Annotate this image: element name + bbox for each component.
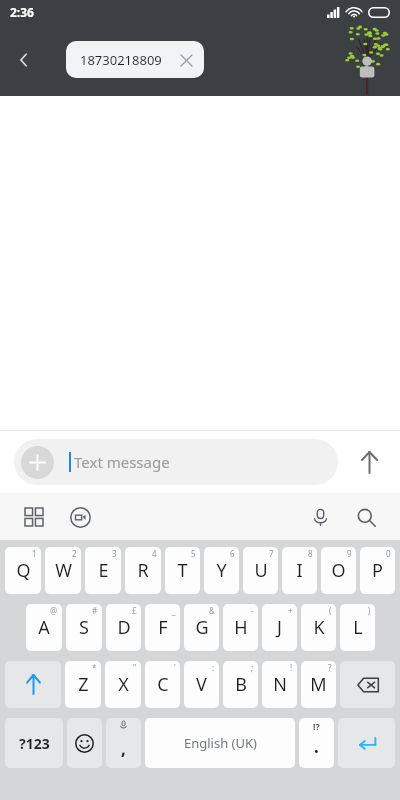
button[interactable]: U [243,547,278,594]
button[interactable]: 18730218809 [66,41,204,78]
staticText: R [137,558,149,583]
staticText: E [98,558,109,583]
button[interactable]: Add attachment [14,439,338,485]
staticText: Y [216,558,227,583]
button[interactable]: Z [65,661,101,708]
button[interactable]: Search [346,497,386,537]
button[interactable]: Apps [14,497,54,537]
staticText: U [254,558,268,583]
staticText: S [79,615,89,640]
button[interactable]: Remove recipient [176,50,196,70]
button[interactable]: Enter [338,718,395,768]
staticText: D [117,615,131,640]
staticText: L [353,615,363,640]
button[interactable]: W [45,547,81,594]
staticText: 4 [152,548,157,559]
button[interactable]: D [106,604,141,651]
staticText: J [277,615,282,640]
button[interactable]: Period [299,718,334,768]
button[interactable]: Contact photo [338,22,394,96]
button[interactable]: Add attachment [21,446,54,479]
button[interactable]: F [145,604,180,651]
staticText: 1 [32,548,37,559]
button[interactable]: Emoji [67,718,102,768]
staticText: , [121,737,126,760]
staticText: Q [16,558,31,583]
button[interactable]: Backspace [340,661,395,708]
button[interactable]: G [184,604,219,651]
staticText: W [55,558,72,583]
staticText: 9 [347,548,352,559]
staticText: @ [50,605,58,616]
button[interactable]: S [66,604,102,651]
staticText: T [177,558,188,583]
button[interactable]: English (UK) [145,718,295,768]
staticText: 3 [112,548,117,559]
staticText: " [133,662,137,673]
button[interactable]: R [125,547,161,594]
button[interactable]: Send [338,436,400,488]
staticText: F [158,615,168,640]
staticText: P [372,558,383,583]
staticText: + [288,605,293,616]
button[interactable]: O [321,547,356,594]
button[interactable]: ?123 [5,718,63,768]
staticText: £ [132,605,137,616]
button[interactable]: I [282,547,317,594]
staticText: B [235,672,247,697]
staticText: ?123 [19,734,50,753]
staticText: ' [174,662,176,673]
staticText: C [157,672,169,697]
staticText: 18730218809 [80,51,162,69]
staticText: _ [172,605,176,616]
button[interactable]: Comma [106,718,141,768]
staticText: Z [78,672,89,697]
button[interactable]: Y [204,547,239,594]
button[interactable]: Voice input [300,497,340,537]
staticText: & [209,605,215,616]
button[interactable]: H [223,604,258,651]
button[interactable]: T [165,547,200,594]
staticText: 0 [386,548,391,559]
button[interactable]: Shift [5,661,61,708]
button[interactable]: X [105,661,141,708]
staticText: ; [251,662,254,673]
staticText: ! [290,662,293,673]
staticText: 8 [308,548,313,559]
staticText: A [38,615,50,640]
staticText: K [313,615,325,640]
staticText: G [195,615,209,640]
staticText: * [92,662,97,673]
button[interactable]: A [26,604,62,651]
staticText: Text message [74,452,170,472]
button[interactable]: L [340,604,375,651]
button[interactable]: Back [0,36,48,84]
button[interactable]: N [262,661,297,708]
staticText: # [92,605,98,616]
button[interactable]: E [85,547,121,594]
staticText: H [234,615,248,640]
staticText: 5 [191,548,196,559]
staticText: ? [328,662,332,673]
button[interactable]: M [301,661,336,708]
button[interactable]: P [360,547,395,594]
staticText: - [251,605,254,616]
staticText: 2:36 [10,4,34,20]
staticText: X [118,672,129,697]
staticText: ) [368,605,371,616]
staticText: . [314,735,319,758]
button[interactable]: Video [60,497,100,537]
button[interactable]: J [262,604,297,651]
staticText: M [310,672,327,697]
button[interactable]: K [301,604,336,651]
staticText: ( [329,605,332,616]
staticText: 6 [230,548,235,559]
staticText: 2 [72,548,77,559]
button[interactable]: Q [5,547,41,594]
button[interactable]: C [145,661,180,708]
staticText: !? [313,720,320,732]
button[interactable]: B [223,661,258,708]
staticText: English (UK) [184,734,257,752]
button[interactable]: V [184,661,219,708]
staticText: V [196,672,207,697]
